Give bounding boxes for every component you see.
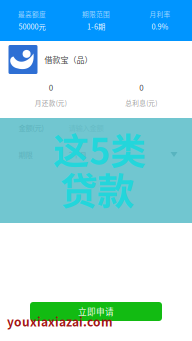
staticText: 最高额度 [18, 9, 46, 19]
staticText: 月利率 [149, 9, 170, 19]
staticText: 3个月 [68, 149, 86, 160]
staticText: 1-6期 [87, 21, 105, 32]
staticText: 0.9% [151, 21, 168, 32]
staticText: 这5类 [53, 123, 146, 175]
button[interactable]: 立即申请 [30, 302, 162, 321]
staticText: 贷款 [60, 162, 134, 216]
staticText: youxiaxiazai.com [7, 313, 113, 330]
staticText: 期限范围 [82, 9, 110, 19]
staticText: 0 [49, 81, 53, 93]
staticText: 借款宝（品） [44, 54, 92, 65]
staticText: 金额(元) [18, 122, 43, 133]
staticText: 0 [139, 81, 143, 93]
staticText: 月还款(元) [35, 98, 67, 108]
staticText: 立即申请 [78, 305, 114, 318]
staticText: 总利息(元) [125, 98, 157, 108]
staticText: 50000元 [18, 21, 45, 32]
staticText: 期限 [18, 149, 32, 160]
